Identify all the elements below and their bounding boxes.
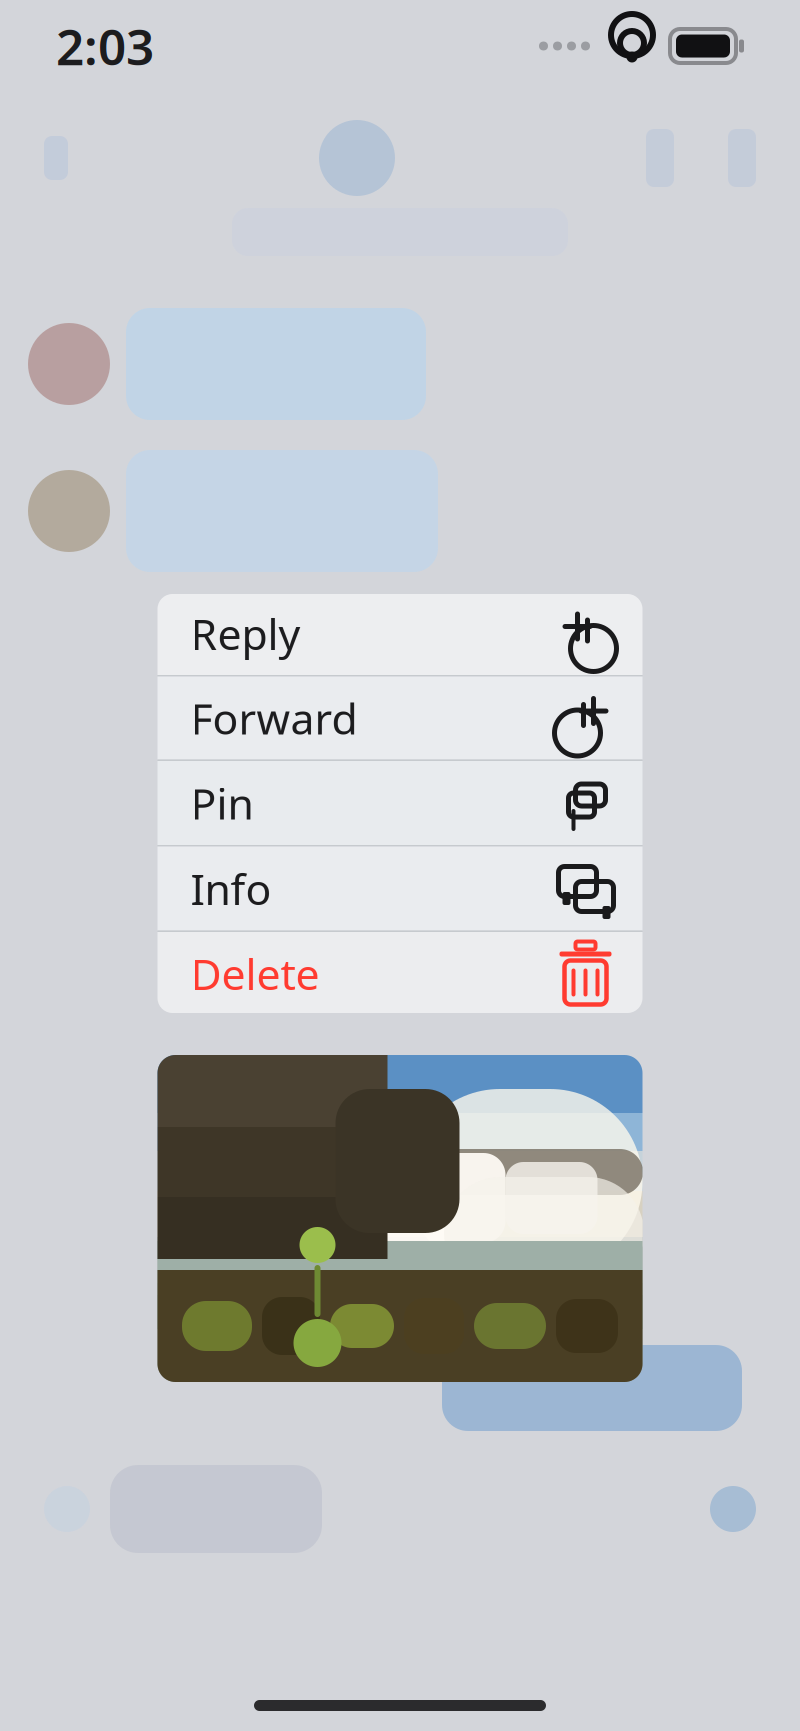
button[interactable]: Reply: [157, 592, 642, 675]
staticText: Pin: [190, 775, 253, 831]
button[interactable]: Pin: [157, 761, 642, 845]
staticText: Reply: [190, 605, 300, 662]
staticText: Delete: [190, 945, 319, 1002]
staticText: 2:03: [56, 13, 154, 79]
button[interactable]: Forward: [157, 676, 642, 759]
staticText: Forward: [190, 690, 357, 746]
button[interactable]: Info: [157, 846, 642, 930]
staticText: Info: [190, 860, 271, 917]
button[interactable]: Photo message: [157, 1055, 642, 1382]
button[interactable]: Delete: [157, 932, 642, 1015]
